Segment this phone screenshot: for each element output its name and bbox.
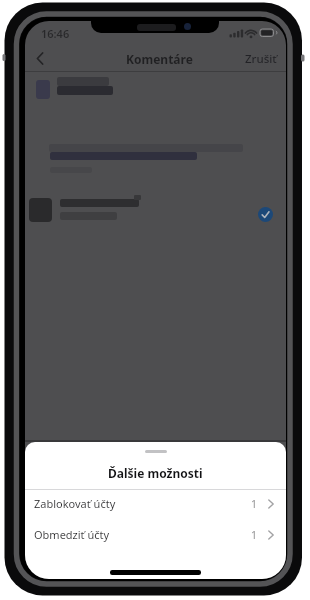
staticText: 1 [251, 528, 258, 542]
staticText: Komentáre [126, 51, 193, 67]
staticText: 1 [251, 497, 258, 511]
button[interactable] [32, 49, 48, 68]
staticText: Zablokovať účty [34, 496, 116, 511]
staticText: Obmedziť účty [34, 527, 110, 542]
button[interactable] [258, 207, 273, 222]
staticText: Ďalšie možnosti [108, 465, 203, 481]
button[interactable]: Zrušiť [245, 51, 277, 67]
button[interactable]: Obmedziť účty [25, 519, 286, 550]
button[interactable]: Zablokovať účty [25, 488, 286, 519]
staticText: 16:46 [41, 26, 70, 41]
